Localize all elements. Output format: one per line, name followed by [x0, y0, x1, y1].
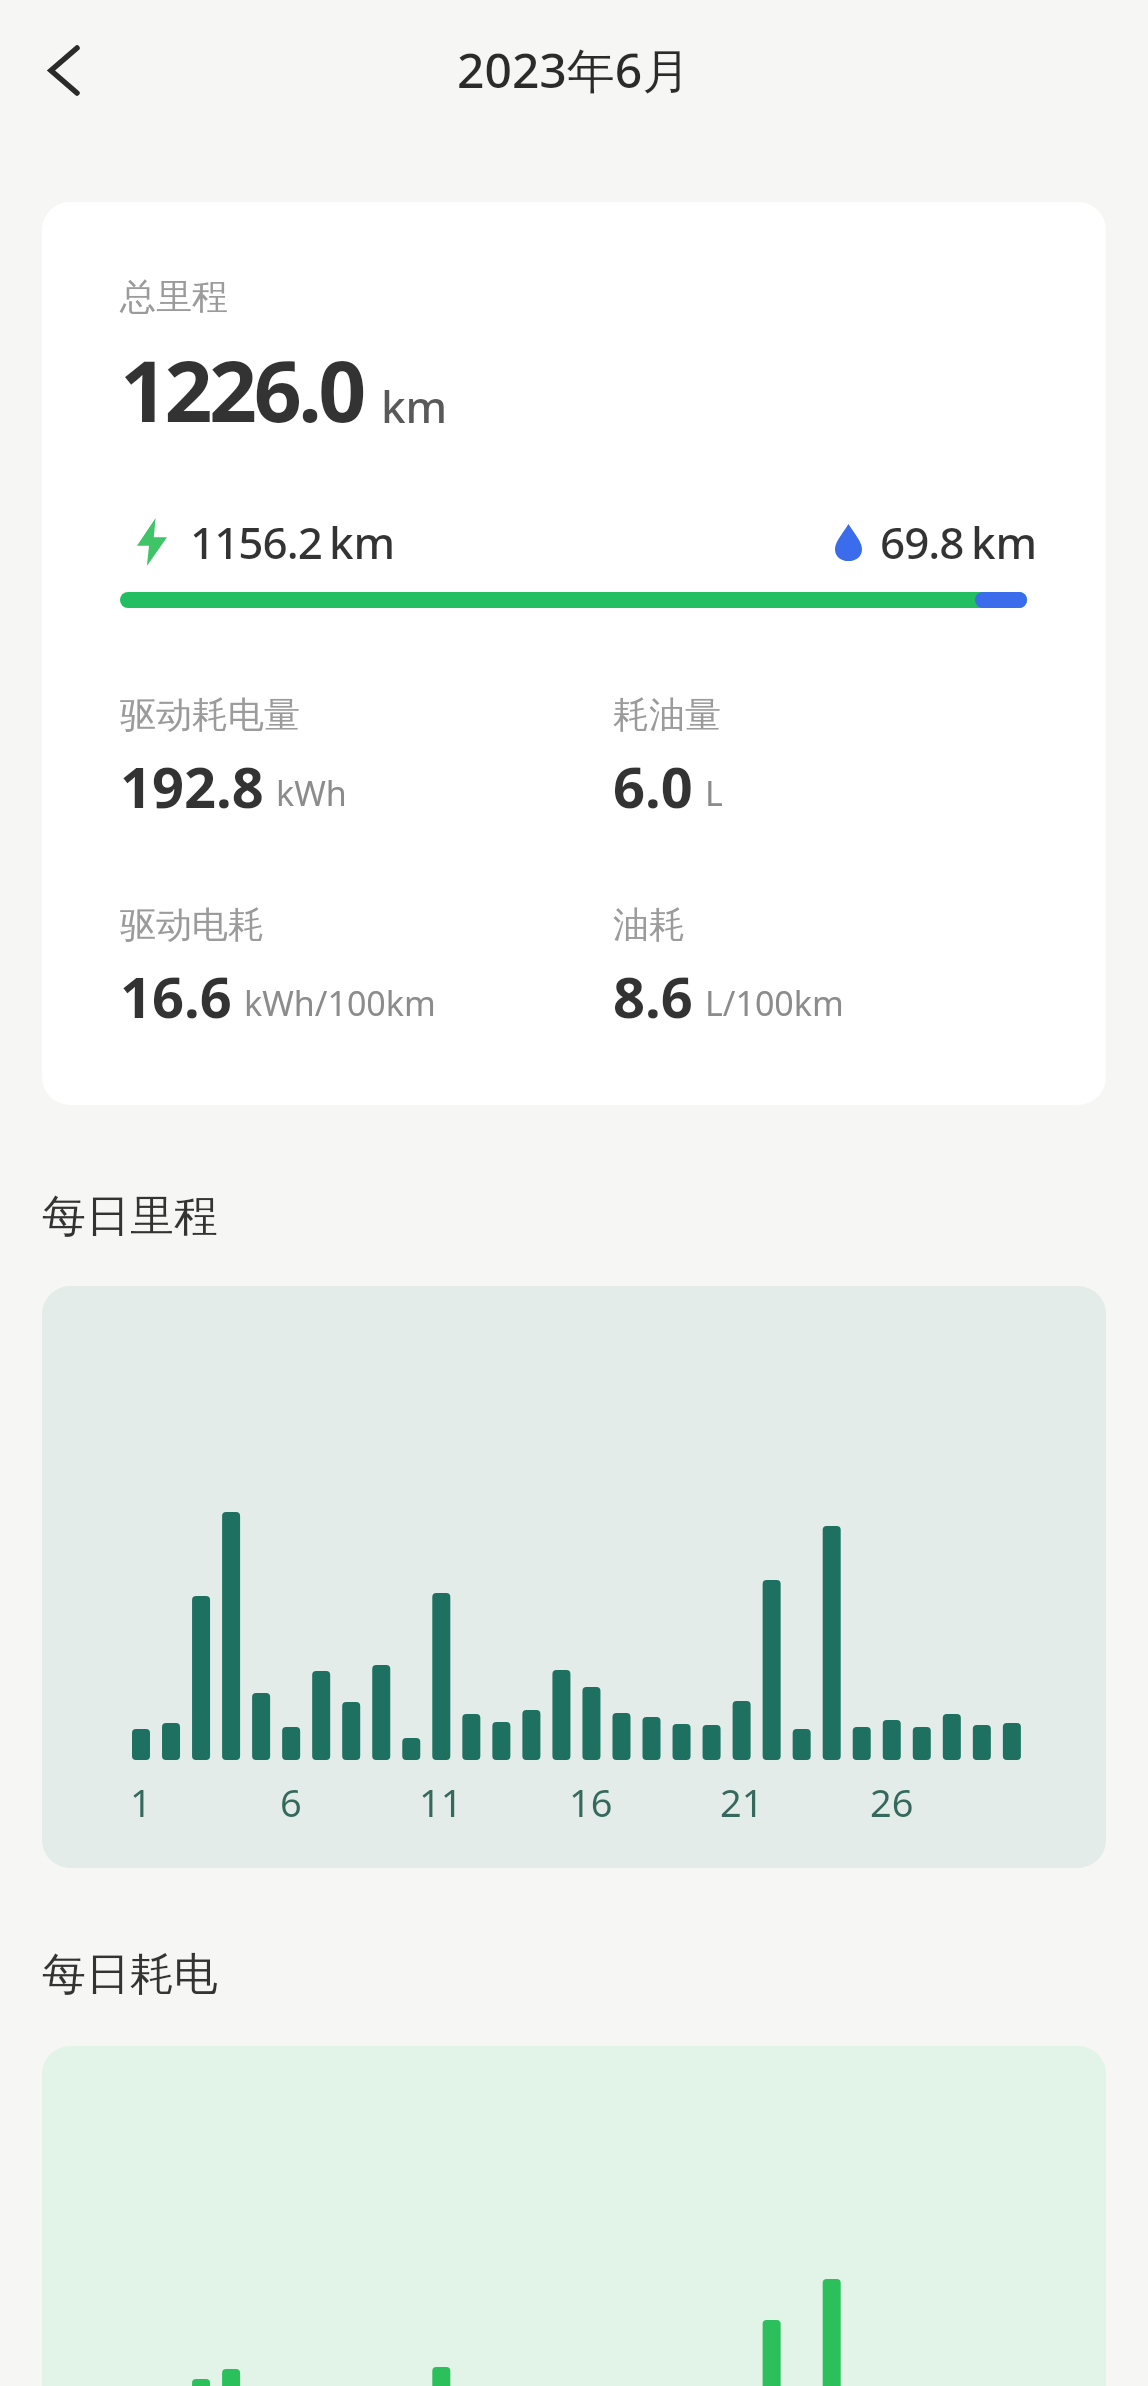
- staticText: 2023年6月: [457, 37, 691, 103]
- staticText: 1156.2: [190, 512, 322, 572]
- staticText: 耗油量: [613, 692, 721, 737]
- button[interactable]: [36, 40, 92, 100]
- staticText: 每日里程: [42, 1189, 218, 1244]
- staticText: 192.8: [120, 748, 264, 824]
- staticText: kWh: [276, 770, 347, 816]
- staticText: km: [971, 512, 1038, 572]
- staticText: 每日耗电: [42, 1947, 218, 2002]
- staticText: 驱动电耗: [120, 902, 264, 947]
- staticText: 6: [280, 1776, 302, 1828]
- staticText: 11: [419, 1776, 463, 1828]
- staticText: 驱动耗电量: [120, 692, 300, 737]
- staticText: 8.6: [613, 958, 693, 1034]
- staticText: 油耗: [613, 902, 685, 947]
- staticText: L: [705, 770, 723, 816]
- staticText: L/100km: [705, 980, 844, 1026]
- staticText: 1226.0: [120, 332, 363, 446]
- staticText: 69.8: [880, 512, 964, 572]
- staticText: 6.0: [613, 748, 693, 824]
- staticText: kWh/100km: [244, 980, 436, 1026]
- staticText: 21: [720, 1776, 764, 1828]
- staticText: 总里程: [120, 274, 228, 319]
- staticText: 26: [870, 1776, 914, 1828]
- staticText: km: [381, 376, 448, 436]
- staticText: 1: [130, 1776, 152, 1828]
- staticText: 16.6: [120, 958, 232, 1034]
- staticText: km: [329, 512, 396, 572]
- staticText: 16: [569, 1776, 613, 1828]
